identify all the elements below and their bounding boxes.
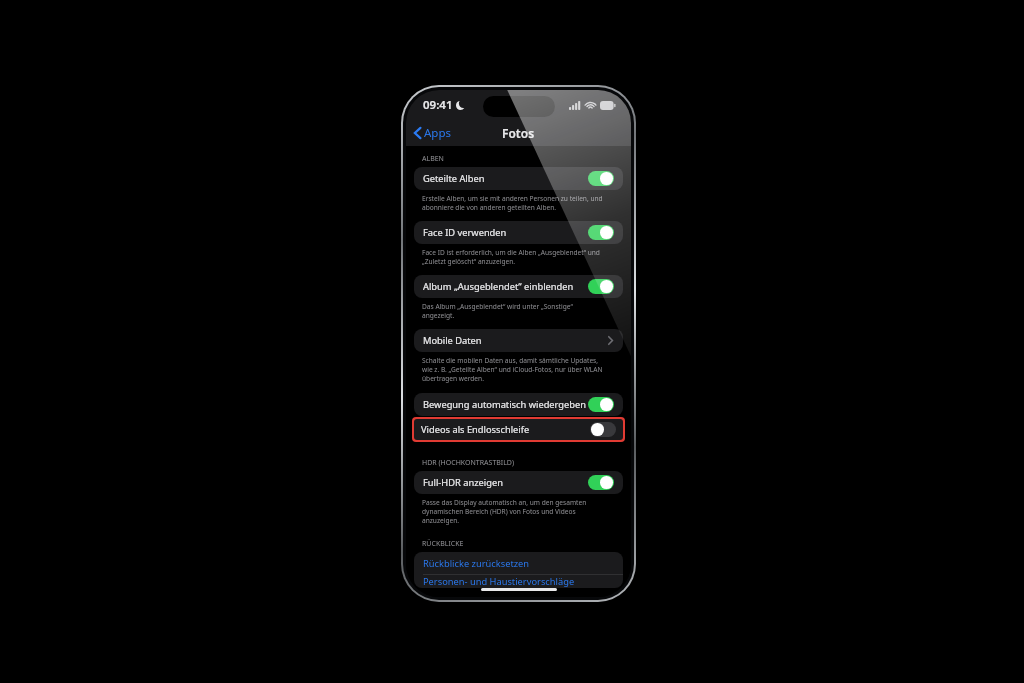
button[interactable]: Geteilte Alben [414,167,623,190]
button[interactable]: Videos als Endlosschleife [414,419,623,440]
staticText: Erstelle Alben, um sie mit anderen Perso… [422,194,603,212]
staticText: ALBEN [422,154,444,164]
button[interactable]: Bewegung automatisch wiedergeben [414,393,623,416]
staticText: Schalte die mobilen Daten aus, damit säm… [422,356,603,383]
button[interactable]: Ein [588,397,614,412]
other: Mobile Daten öffnen [608,336,613,345]
button[interactable]: Aus [590,422,616,437]
staticText: Face ID verwenden [423,226,588,239]
button[interactable]: Rückblicke zurücksetzen [414,552,623,574]
button[interactable]: Ein [588,225,614,240]
button[interactable]: Ein [588,279,614,294]
button[interactable]: Ein [588,171,614,186]
staticText: Das Album „Ausgeblendet“ wird unter „Son… [422,302,573,320]
staticText: Geteilte Alben [423,172,588,185]
staticText: Album „Ausgeblendet“ einblenden [423,280,588,293]
staticText: Mobile Daten [423,334,608,347]
button[interactable]: Personen- und Haustiervorschläge [414,575,623,588]
staticText: Fotos [502,125,535,141]
staticText: Apps [424,125,452,141]
staticText: Passe das Display automatisch an, um den… [422,498,587,525]
staticText: Rückblicke zurücksetzen [423,557,530,570]
staticText: Full-HDR anzeigen [423,476,588,489]
button[interactable]: Face ID verwenden [414,221,623,244]
button[interactable]: Ein [588,475,614,490]
staticText: 09:41 [423,97,453,113]
staticText: Personen- und Haustiervorschläge [423,575,575,588]
button[interactable]: Apps [406,121,460,145]
staticText: RÜCKBLICKE [422,539,464,549]
staticText: Face ID ist erforderlich, um die Alben „… [422,248,600,266]
button[interactable]: Album „Ausgeblendet“ einblenden [414,275,623,298]
button[interactable]: Full-HDR anzeigen [414,471,623,494]
button[interactable]: Mobile Daten [414,329,623,352]
staticText: Bewegung automatisch wiedergeben [423,398,588,411]
staticText: Videos als Endlosschleife [421,423,590,436]
staticText: HDR (HOCHKONTRASTBILD) [422,458,515,468]
